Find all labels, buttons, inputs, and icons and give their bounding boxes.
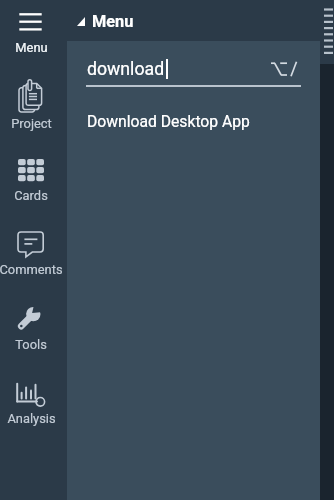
other: Keyboard shortcut Option Slash <box>270 61 298 77</box>
button[interactable]: Cards <box>0 150 67 210</box>
other: Cards <box>18 159 44 182</box>
other: Analysis <box>16 383 45 408</box>
staticText: Project <box>11 116 52 131</box>
button[interactable]: Analysis <box>0 374 67 433</box>
button[interactable]: Comments <box>0 223 67 284</box>
button[interactable]: Menu <box>0 4 67 62</box>
staticText: Cards <box>14 188 48 203</box>
staticText: download <box>87 59 165 80</box>
other: Tools <box>17 306 41 330</box>
button[interactable] <box>67 48 320 90</box>
button[interactable]: Menu <box>77 11 134 31</box>
staticText: Menu <box>15 40 48 55</box>
staticText: Analysis <box>7 411 56 426</box>
button[interactable]: Download Desktop App <box>67 103 320 137</box>
button[interactable]: Project <box>0 69 67 138</box>
other: Comments <box>18 232 43 258</box>
staticText: Menu <box>92 12 134 31</box>
staticText: Download Desktop App <box>87 112 250 130</box>
other: Project <box>19 78 42 112</box>
other: Menu <box>19 13 42 31</box>
staticText: Comments <box>0 262 63 277</box>
button[interactable]: Tools <box>0 297 67 359</box>
staticText: Tools <box>15 337 47 352</box>
